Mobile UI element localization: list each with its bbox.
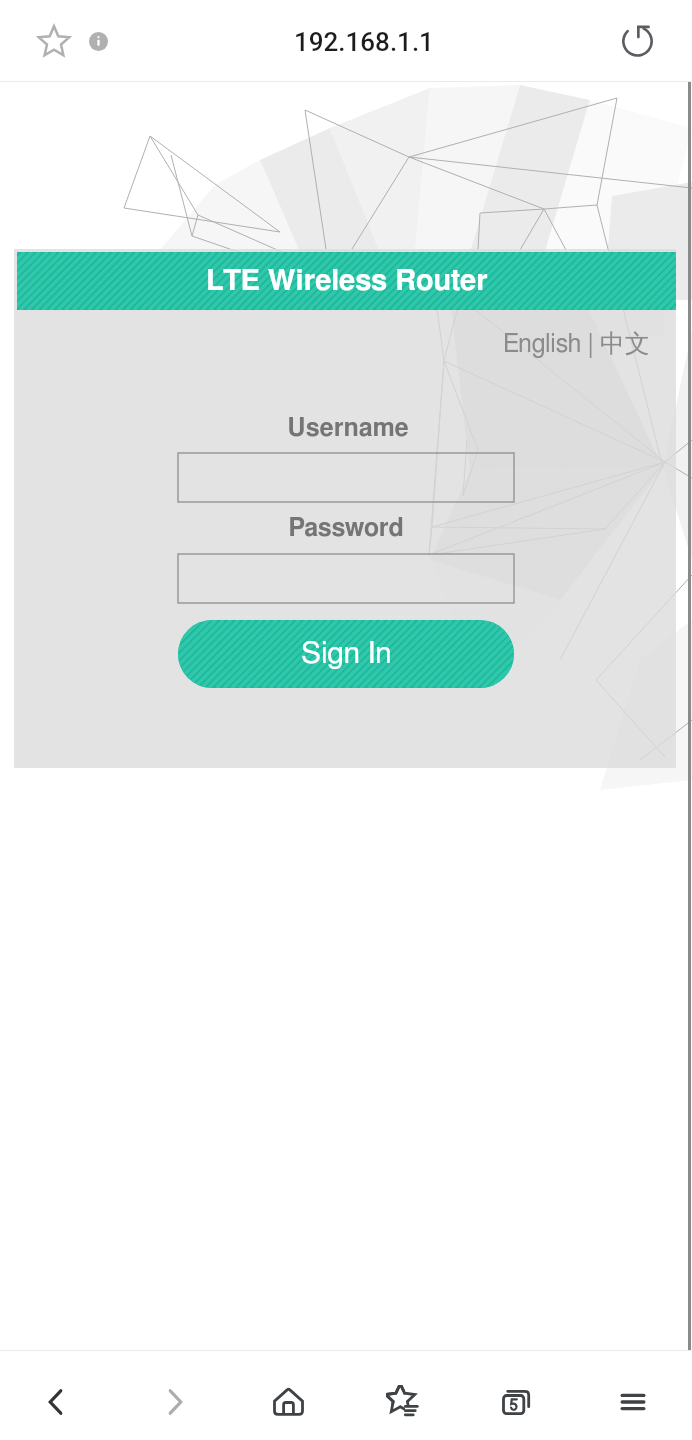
button[interactable]: English | 中文 — [503, 328, 650, 359]
button[interactable]: Page info — [79, 22, 117, 60]
staticText: LTE Wireless Router — [206, 267, 488, 296]
button[interactable]: Home — [252, 1366, 324, 1438]
staticText: 192.168.1.1 — [294, 27, 434, 57]
staticText: Username — [17, 416, 679, 441]
button[interactable]: Refresh — [610, 13, 664, 67]
button[interactable]: Bookmarks — [367, 1366, 439, 1438]
button[interactable]: Menu — [597, 1366, 669, 1438]
button[interactable]: Forward — [139, 1366, 211, 1438]
staticText: English | 中文 — [503, 328, 650, 359]
button[interactable]: Back — [20, 1366, 92, 1438]
button[interactable]: Tabs — [481, 1366, 553, 1438]
button[interactable] — [178, 554, 514, 603]
button[interactable]: Sign In — [178, 620, 514, 688]
button[interactable] — [178, 453, 514, 502]
staticText: Sign In — [301, 639, 392, 669]
staticText: Password — [15, 516, 677, 541]
button[interactable]: Bookmark — [28, 15, 80, 67]
